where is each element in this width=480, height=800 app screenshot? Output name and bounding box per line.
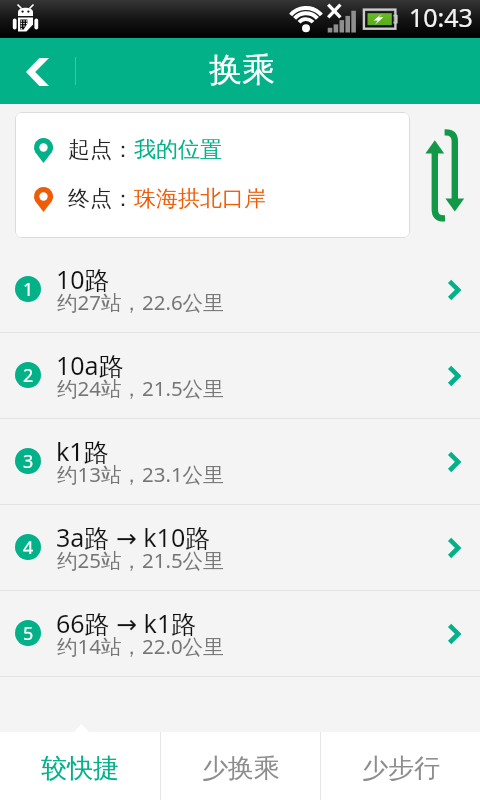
staticText: 10路 xyxy=(56,262,110,296)
staticText: 66路 → k1路 xyxy=(56,606,197,640)
button[interactable]: 3 xyxy=(0,419,480,505)
staticText: 约24站，21.5公里 xyxy=(57,374,224,402)
button[interactable]: 4 xyxy=(0,505,480,591)
button[interactable]: Back xyxy=(0,38,76,104)
staticText: 我的位置 xyxy=(134,136,222,164)
staticText: 5 xyxy=(23,621,34,646)
staticText: 少换乘 xyxy=(202,752,280,785)
staticText: 少步行 xyxy=(362,752,440,785)
button[interactable]: 2 xyxy=(0,333,480,419)
staticText: 3a路 → k10路 xyxy=(56,520,211,554)
button[interactable]: 少步行 xyxy=(321,732,480,800)
button[interactable]: 起点： xyxy=(15,112,410,238)
staticText: 约25站，21.5公里 xyxy=(57,546,224,574)
staticText: 4 xyxy=(23,535,34,560)
staticText: 换乘 xyxy=(209,49,275,91)
staticText: 较快捷 xyxy=(41,752,119,785)
staticText: 约27站，22.6公里 xyxy=(57,288,224,316)
button[interactable]: 少换乘 xyxy=(161,732,320,800)
staticText: 终点： xyxy=(68,185,134,213)
button[interactable]: 较快捷 xyxy=(0,732,160,800)
button[interactable]: Swap start and destination xyxy=(420,114,470,226)
staticText: 3 xyxy=(23,449,34,474)
staticText: 10a路 xyxy=(56,348,124,382)
button[interactable]: 5 xyxy=(0,591,480,677)
button[interactable]: 1 xyxy=(0,247,480,333)
staticText: 起点： xyxy=(68,136,134,164)
staticText: 约13站，23.1公里 xyxy=(57,460,224,488)
staticText: 2 xyxy=(23,363,34,388)
staticText: 1 xyxy=(23,277,34,302)
staticText: k1路 xyxy=(56,434,109,468)
staticText: 约14站，22.0公里 xyxy=(57,632,224,660)
staticText: 10:43 xyxy=(409,0,473,34)
staticText: 珠海拱北口岸 xyxy=(134,185,266,213)
